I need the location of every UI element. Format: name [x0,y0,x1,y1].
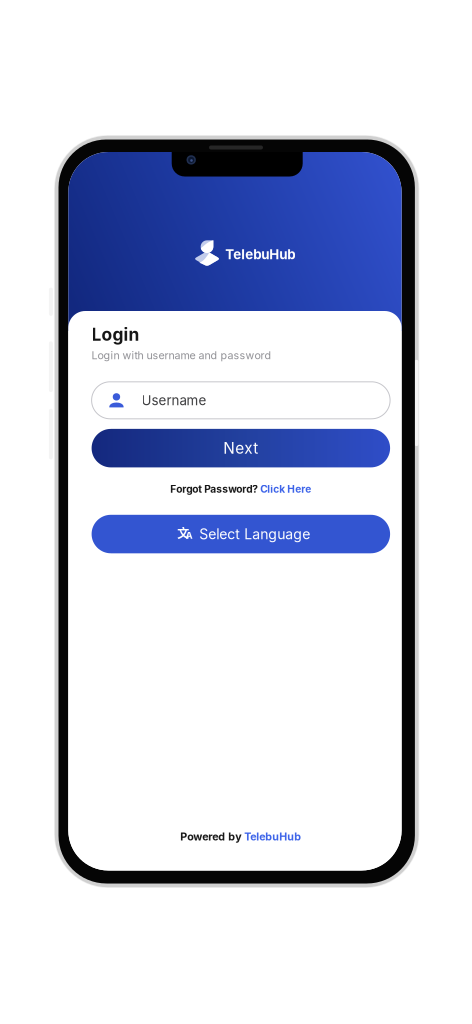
staticText: A [185,529,192,541]
staticText: Username [142,392,207,408]
staticText: Select Language [199,526,310,542]
staticText: 文 [177,524,189,541]
staticText: TelebuHub [225,246,295,262]
staticText: Click Here [260,483,311,495]
staticText: Forgot Password? [170,483,260,495]
staticText: Login with username and password [92,349,272,362]
button[interactable]: Forgot Password? [92,482,390,496]
button[interactable]: 文 [92,515,390,553]
staticText: Login [92,324,140,345]
staticText: TelebuHub [244,830,301,843]
staticText: Powered by [180,830,244,843]
button[interactable]: Next [92,429,390,467]
staticText: Next [223,439,258,457]
